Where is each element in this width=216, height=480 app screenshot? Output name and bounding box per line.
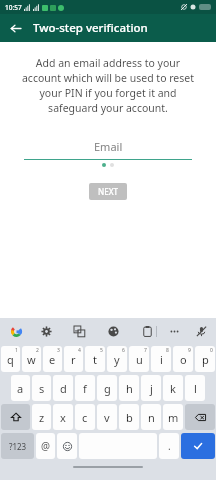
- button[interactable]: w: [22, 346, 41, 372]
- staticText: s: [39, 381, 45, 396]
- staticText: l: [194, 381, 197, 396]
- staticText: 3: [57, 347, 60, 354]
- staticText: h: [126, 381, 133, 396]
- staticText: x: [60, 410, 66, 425]
- button[interactable]: Backspace: [185, 404, 215, 430]
- staticText: 9: [188, 347, 191, 354]
- staticText: 0: [210, 347, 213, 354]
- staticText: o: [180, 352, 187, 367]
- staticText: i: [160, 352, 163, 367]
- button[interactable]: t: [85, 346, 105, 372]
- staticText: w: [27, 352, 36, 367]
- button[interactable]: a: [11, 375, 30, 401]
- staticText: e: [49, 352, 56, 367]
- staticText: @: [41, 439, 50, 453]
- button[interactable]: More options: [166, 323, 182, 339]
- staticText: 6: [122, 347, 125, 354]
- button[interactable]: o: [173, 346, 193, 372]
- staticText: 5: [100, 347, 103, 354]
- button[interactable]: g: [97, 375, 117, 401]
- staticText: g: [104, 381, 111, 396]
- staticText: q: [7, 352, 14, 367]
- staticText: m: [168, 410, 179, 425]
- staticText: c: [82, 410, 88, 425]
- staticText: a: [17, 381, 24, 396]
- button[interactable]: Google: [7, 322, 25, 340]
- staticText: ?123: [9, 441, 27, 452]
- button[interactable]: Enter: [181, 433, 215, 459]
- button[interactable]: f: [75, 375, 95, 401]
- button[interactable]: u: [129, 346, 149, 372]
- button[interactable]: Emoji: [57, 433, 77, 459]
- staticText: 8: [166, 347, 169, 354]
- button[interactable]: c: [75, 404, 95, 430]
- staticText: .: [168, 439, 171, 453]
- button[interactable]: h: [119, 375, 139, 401]
- staticText: b: [126, 410, 133, 425]
- button[interactable]: NEXT: [89, 183, 127, 200]
- button[interactable]: b: [119, 404, 139, 430]
- staticText: u: [136, 352, 143, 367]
- button[interactable]: k: [163, 375, 183, 401]
- button[interactable]: Stickers: [105, 323, 121, 339]
- staticText: Email: [94, 139, 123, 154]
- button[interactable]: .: [159, 433, 179, 459]
- staticText: 2: [36, 347, 39, 354]
- staticText: v: [104, 410, 110, 425]
- staticText: 1: [15, 347, 18, 354]
- staticText: 7: [144, 347, 147, 354]
- button[interactable]: l: [185, 375, 205, 401]
- staticText: NEXT: [98, 186, 119, 197]
- button[interactable]: Shift: [1, 404, 30, 430]
- button[interactable]: m: [163, 404, 183, 430]
- staticText: p: [202, 352, 209, 367]
- button[interactable]: ?123: [1, 433, 34, 459]
- button[interactable]: Voice input off: [193, 323, 209, 339]
- staticText: k: [170, 381, 176, 396]
- staticText: d: [60, 381, 67, 396]
- button[interactable]: z: [32, 404, 51, 430]
- button[interactable]: j: [141, 375, 161, 401]
- staticText: j: [150, 381, 153, 396]
- button[interactable]: Clipboard: [139, 323, 155, 339]
- button[interactable]: p: [195, 346, 215, 372]
- staticText: Two-step verification: [33, 20, 148, 36]
- staticText: 4: [78, 347, 81, 354]
- button[interactable]: Email: [24, 139, 192, 160]
- button[interactable]: @: [36, 433, 55, 459]
- button[interactable]: Translate: [71, 323, 87, 339]
- staticText: t: [93, 352, 97, 367]
- button[interactable]: s: [32, 375, 51, 401]
- staticText: r: [71, 352, 76, 367]
- staticText: f: [83, 381, 87, 396]
- button[interactable]: r: [64, 346, 83, 372]
- button[interactable]: d: [53, 375, 73, 401]
- button[interactable]: x: [53, 404, 73, 430]
- staticText: y: [114, 352, 120, 367]
- button[interactable]: i: [151, 346, 171, 372]
- button[interactable]: y: [107, 346, 127, 372]
- staticText: Add an email address to your account whi…: [15, 56, 201, 115]
- button[interactable]: v: [97, 404, 117, 430]
- button[interactable]: Settings: [38, 323, 54, 339]
- button[interactable]: q: [1, 346, 20, 372]
- button[interactable]: e: [43, 346, 62, 372]
- button[interactable]: Back: [4, 17, 26, 39]
- button[interactable]: n: [141, 404, 161, 430]
- staticText: 10:57: [5, 3, 22, 12]
- staticText: z: [39, 410, 45, 425]
- staticText: n: [148, 410, 155, 425]
